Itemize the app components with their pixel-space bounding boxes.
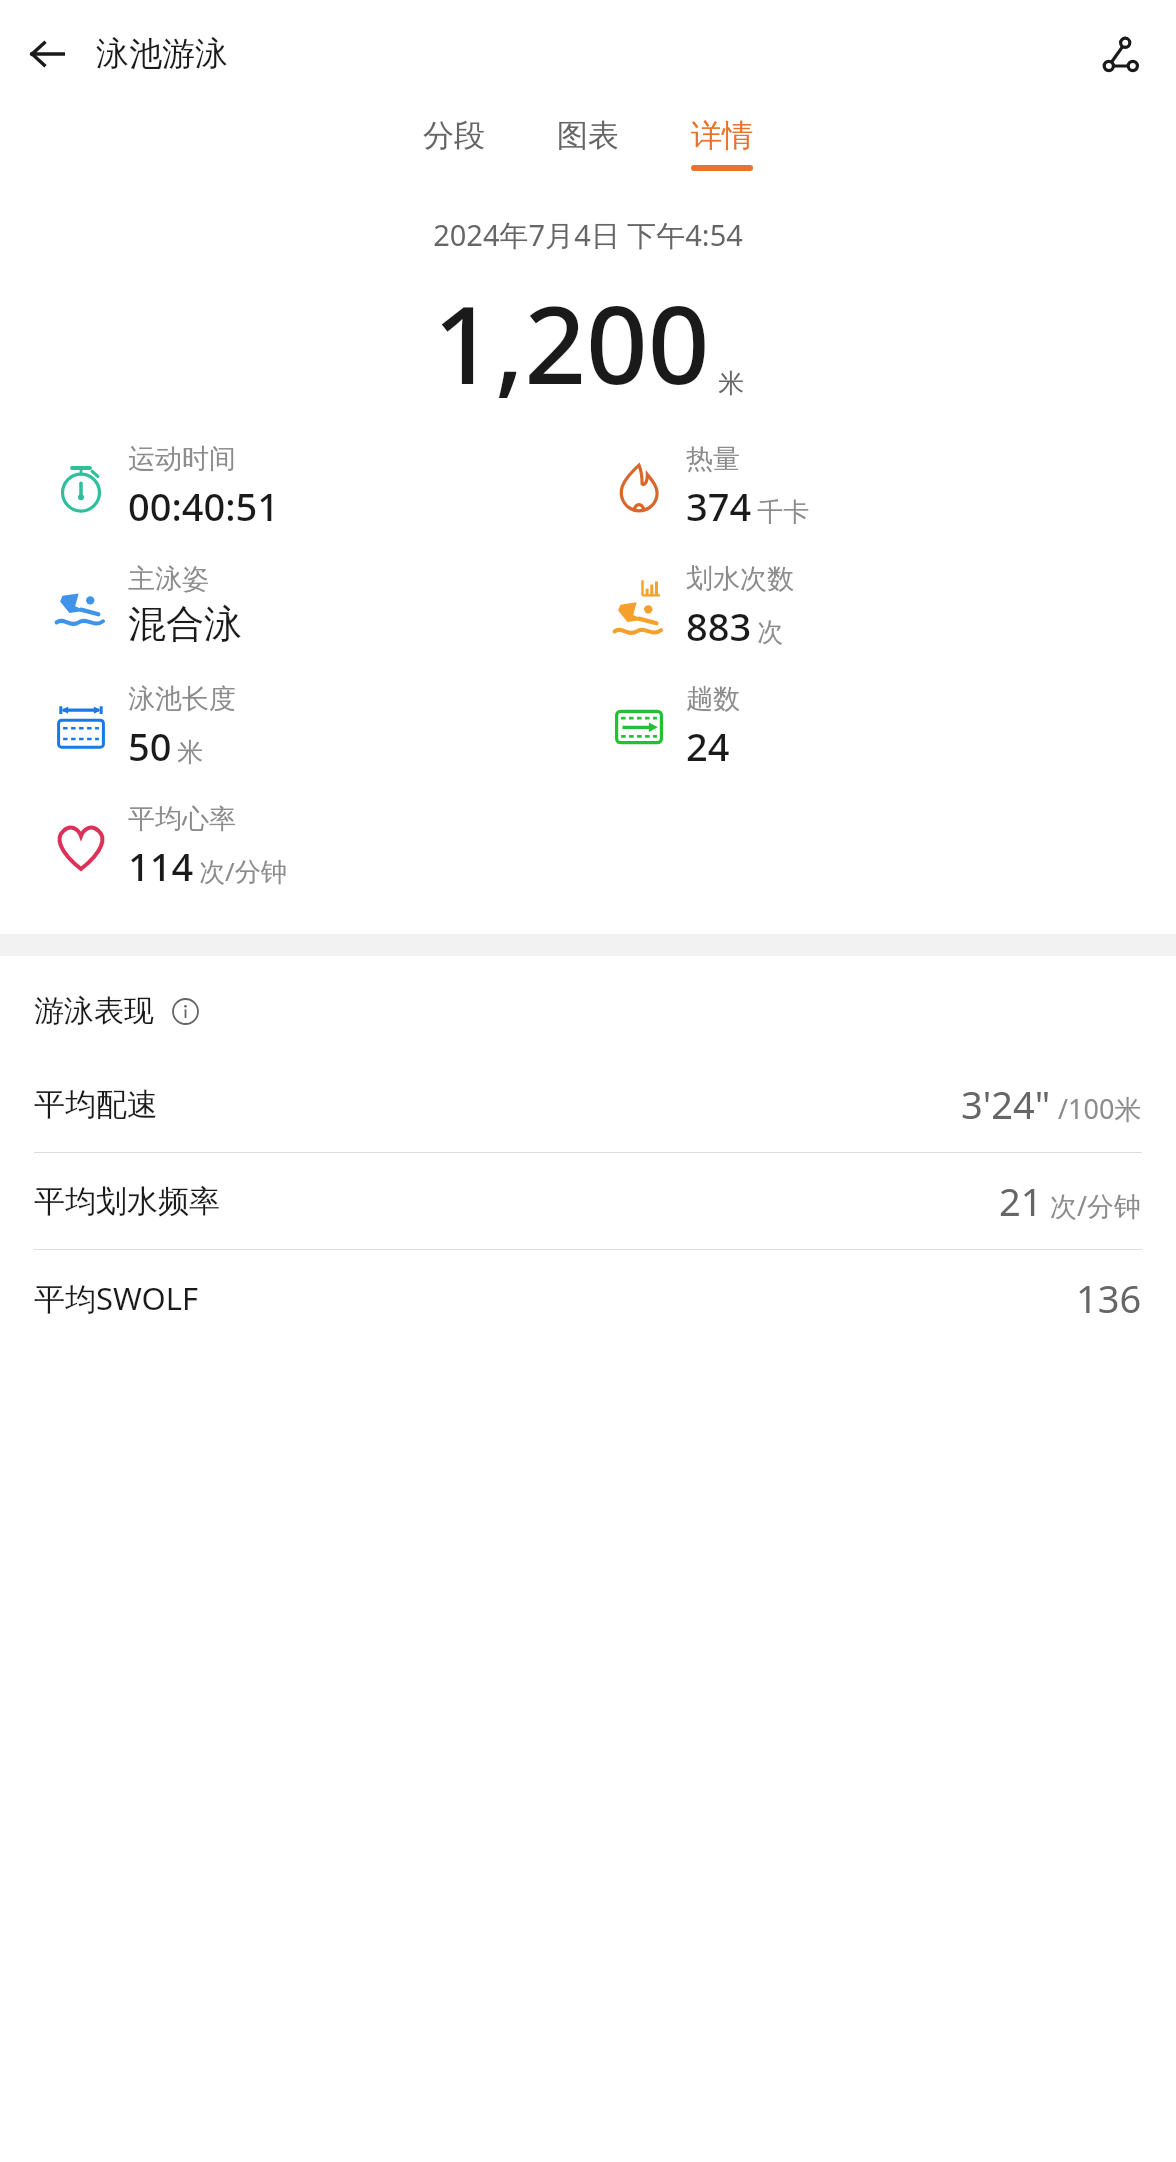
staticText: 136 bbox=[1076, 1272, 1142, 1324]
staticText: 主泳姿 bbox=[128, 562, 209, 596]
staticText: 热量 bbox=[686, 442, 740, 476]
staticText: 平均SWOLF bbox=[34, 1277, 199, 1319]
button[interactable]: 图表 bbox=[547, 112, 629, 175]
staticText: 1,200 bbox=[433, 269, 710, 416]
staticText: 883 bbox=[686, 600, 752, 652]
staticText: 2024年7月4日 下午4:54 bbox=[0, 215, 1176, 255]
button[interactable]: 分段 bbox=[413, 112, 495, 175]
button[interactable]: Back bbox=[18, 25, 76, 83]
staticText: 混合泳 bbox=[128, 600, 242, 648]
staticText: 3'24" bbox=[961, 1078, 1051, 1130]
staticText: 详情 bbox=[691, 116, 753, 155]
staticText: 趟数 bbox=[686, 682, 740, 716]
staticText: 次/分钟 bbox=[199, 853, 287, 889]
staticText: 泳池游泳 bbox=[96, 33, 228, 75]
staticText: 千卡 bbox=[757, 496, 809, 529]
staticText: 50 bbox=[128, 720, 172, 772]
staticText: 374 bbox=[686, 480, 752, 532]
staticText: 游泳表现 bbox=[34, 992, 154, 1030]
staticText: 分段 bbox=[423, 116, 485, 155]
button[interactable]: 详情 bbox=[681, 112, 763, 175]
button[interactable]: 平均配速 bbox=[0, 1056, 1176, 1152]
staticText: /100米 bbox=[1051, 1090, 1142, 1127]
staticText: 平均配速 bbox=[34, 1085, 158, 1124]
button[interactable]: 划水次数 bbox=[608, 562, 794, 652]
staticText: 米 bbox=[718, 367, 744, 400]
button[interactable]: 泳池长度 bbox=[50, 682, 236, 772]
button[interactable]: Share bbox=[1090, 24, 1150, 84]
staticText: 次 bbox=[757, 616, 783, 649]
staticText: 平均心率 bbox=[128, 802, 236, 836]
staticText: 次/分钟 bbox=[1043, 1187, 1142, 1224]
button[interactable]: 平均SWOLF bbox=[0, 1250, 1176, 1346]
staticText: 00:40:51 bbox=[128, 480, 280, 532]
button[interactable]: 平均划水频率 bbox=[0, 1153, 1176, 1249]
staticText: 21 bbox=[999, 1175, 1043, 1227]
staticText: 运动时间 bbox=[128, 442, 236, 476]
staticText: 划水次数 bbox=[686, 562, 794, 596]
staticText: 图表 bbox=[557, 116, 619, 155]
staticText: 泳池长度 bbox=[128, 682, 236, 716]
button[interactable]: 平均心率 bbox=[50, 802, 287, 892]
staticText: 平均划水频率 bbox=[34, 1182, 220, 1221]
button[interactable]: Info bbox=[166, 992, 204, 1030]
staticText: 114 bbox=[128, 840, 194, 892]
button[interactable]: 主泳姿 bbox=[50, 562, 242, 648]
button[interactable]: 趟数 bbox=[608, 682, 740, 772]
button[interactable]: 运动时间 bbox=[50, 442, 280, 532]
staticText: 24 bbox=[686, 720, 730, 772]
button[interactable]: 热量 bbox=[608, 442, 809, 532]
staticText: 米 bbox=[177, 736, 203, 769]
